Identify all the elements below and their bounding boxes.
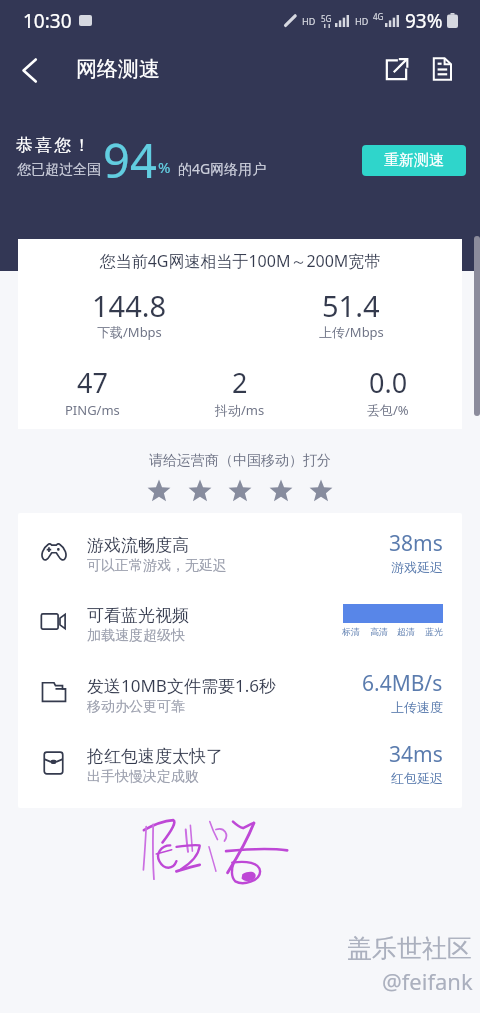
staticText: 您当前4G网速相当于100M～200M宽带 (18, 250, 462, 272)
staticText: PING/ms (65, 401, 120, 419)
staticText: @feifank (382, 966, 473, 996)
staticText: 蓝光 (425, 626, 443, 637)
staticText: 抖动/ms (215, 401, 265, 419)
staticText: 34ms (389, 740, 443, 769)
staticText: 发送10MB文件需要1.6秒 (87, 674, 276, 697)
staticText: 6.4MB/s (362, 669, 443, 698)
button[interactable]: 发送10MB文件需要1.6秒 (18, 660, 462, 730)
staticText: % (158, 157, 171, 177)
staticText: 可看蓝光视频 (87, 605, 189, 626)
button[interactable]: Rate 4 stars (265, 474, 297, 506)
staticText: 93% (405, 8, 443, 34)
staticText: 出手快慢决定成败 (87, 768, 199, 786)
staticText: 可以正常游戏，无延迟 (87, 557, 227, 575)
staticText: 恭喜您！ (16, 135, 93, 156)
staticText: 10:30 (23, 8, 72, 34)
button[interactable]: Rate 1 stars (143, 474, 175, 506)
staticText: 加载速度超级快 (87, 627, 185, 645)
staticText: 144.8 (92, 286, 167, 325)
staticText: 游戏流畅度高 (87, 535, 189, 556)
staticText: HD (302, 15, 316, 27)
staticText: 0.0 (369, 364, 408, 401)
staticText: 丢包/% (367, 401, 409, 419)
staticText: 标清 (342, 626, 360, 637)
staticText: 盖乐世社区 (347, 933, 472, 964)
button[interactable]: Rate 5 stars (305, 474, 337, 506)
button[interactable]: 重新测速 (362, 145, 466, 176)
staticText: 2 (232, 364, 248, 401)
staticText: 下载/Mbps (97, 323, 162, 341)
button[interactable]: Share (373, 46, 419, 92)
staticText: 高清 (370, 626, 388, 637)
staticText: 5G (321, 13, 332, 24)
staticText: 请给运营商（中国移动）打分 (0, 452, 480, 470)
button[interactable]: 抢红包速度太快了 (18, 731, 462, 801)
button[interactable]: Rate 3 stars (224, 474, 256, 506)
button[interactable]: Back (6, 47, 52, 93)
staticText: 移动办公更可靠 (87, 698, 185, 716)
staticText: 超清 (397, 626, 415, 637)
staticText: 游戏延迟 (391, 559, 443, 575)
staticText: 上传/Mbps (319, 323, 384, 341)
staticText: 抢红包速度太快了 (87, 746, 223, 767)
staticText: 的4G网络用户 (178, 159, 267, 178)
staticText: 47 (77, 364, 108, 401)
staticText: 4G (373, 11, 384, 22)
staticText: 上传速度 (391, 699, 443, 715)
button[interactable]: 游戏流畅度高 (18, 520, 462, 590)
button[interactable]: 可看蓝光视频 (18, 590, 462, 660)
staticText: 重新测速 (384, 151, 444, 170)
staticText: 51.4 (322, 286, 380, 325)
button[interactable]: Report (419, 46, 465, 92)
staticText: 红包延迟 (391, 770, 443, 786)
staticText: 网络测速 (76, 56, 160, 82)
staticText: 您已超过全国 (17, 161, 101, 179)
staticText: HD (355, 15, 369, 27)
staticText: 94 (103, 128, 157, 192)
staticText: 38ms (389, 529, 443, 558)
button[interactable]: Rate 2 stars (184, 474, 216, 506)
